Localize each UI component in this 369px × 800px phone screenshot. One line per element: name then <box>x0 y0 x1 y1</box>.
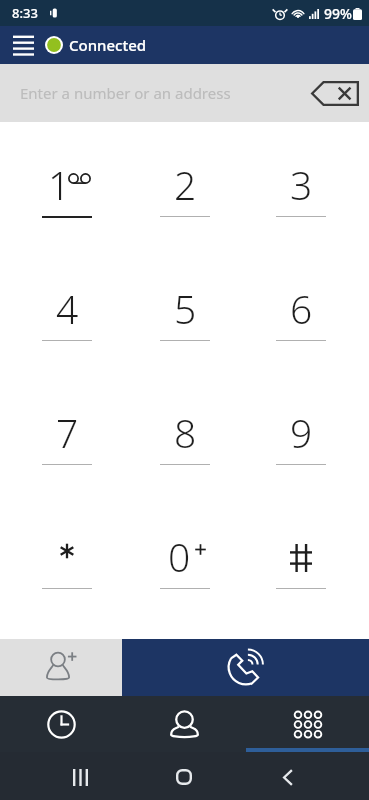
staticText: Enter a number or an address <box>20 83 231 103</box>
staticText: 6 <box>290 282 313 335</box>
staticText: 1 <box>48 158 71 211</box>
button[interactable]: 7 <box>9 388 125 488</box>
button[interactable]: 5 <box>127 264 243 364</box>
button[interactable] <box>9 512 125 612</box>
button[interactable]: Home <box>132 752 236 800</box>
button[interactable]: Menu <box>0 26 46 64</box>
staticText: 8 <box>174 406 197 459</box>
staticText: 2 <box>174 158 197 211</box>
staticText: Connected <box>69 35 147 55</box>
button[interactable]: 1 <box>9 140 125 240</box>
button[interactable]: Call log <box>0 696 123 752</box>
staticText: 4 <box>56 282 79 335</box>
button[interactable]: Add contact <box>0 639 122 696</box>
button[interactable]: 9 <box>243 388 359 488</box>
button[interactable]: 3 <box>243 140 359 240</box>
button[interactable] <box>243 512 359 612</box>
staticText: 99% <box>324 4 352 23</box>
staticText: 9 <box>290 406 313 459</box>
button[interactable]: 6 <box>243 264 359 364</box>
staticText: 0 <box>168 530 191 583</box>
button[interactable]: 4 <box>9 264 125 364</box>
staticText: 7 <box>56 406 79 459</box>
button[interactable]: Contacts <box>123 696 246 752</box>
button[interactable]: 0 <box>127 512 243 612</box>
staticText: 8:33 <box>12 4 38 22</box>
button[interactable]: Keypad <box>246 696 369 752</box>
button[interactable]: 8 <box>127 388 243 488</box>
staticText: 3 <box>290 158 313 211</box>
staticText: 5 <box>174 282 197 335</box>
button[interactable]: Recent apps <box>29 752 132 800</box>
button[interactable]: Back <box>236 752 340 800</box>
button[interactable]: Backspace <box>307 71 363 115</box>
button[interactable]: Call <box>122 639 369 696</box>
button[interactable]: 2 <box>127 140 243 240</box>
